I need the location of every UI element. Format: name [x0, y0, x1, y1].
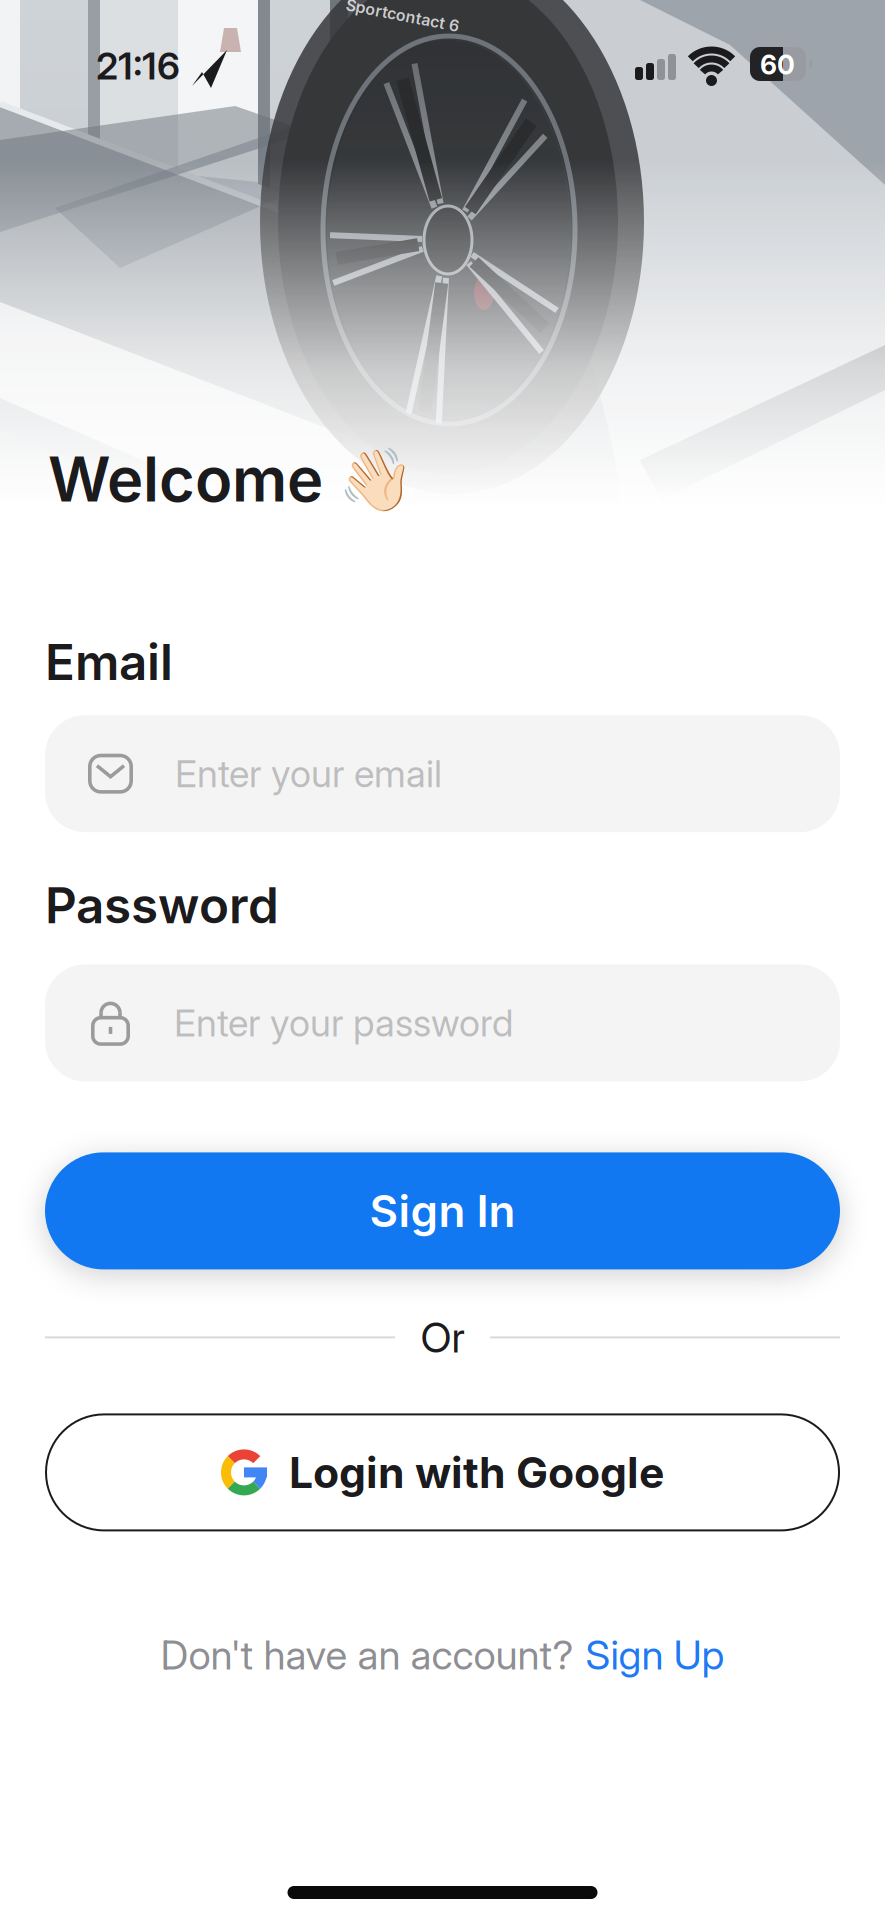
staticText: Email: [45, 633, 173, 691]
staticText: Enter your password: [174, 1001, 513, 1045]
staticText: 21:16: [96, 44, 180, 88]
staticText: Sportcontact 6: [345, 6, 460, 25]
staticText: Password: [45, 876, 279, 934]
button[interactable]: Sign Up: [585, 1631, 724, 1679]
staticText: Sign Up: [585, 1631, 724, 1679]
staticText: Welcome 👋🏻: [48, 443, 414, 516]
button[interactable]: Enter your email: [45, 715, 840, 832]
staticText: Login with Google: [289, 1447, 664, 1497]
staticText: 60: [760, 49, 795, 80]
button[interactable]: Login with Google: [45, 1413, 840, 1531]
button[interactable]: Sign In: [45, 1152, 840, 1269]
staticText: Enter your email: [175, 752, 442, 796]
staticText: Or: [420, 1313, 464, 1362]
staticText: Sign In: [369, 1185, 515, 1237]
staticText: Don't have an account?: [160, 1631, 573, 1679]
button[interactable]: Enter your password: [45, 964, 840, 1081]
